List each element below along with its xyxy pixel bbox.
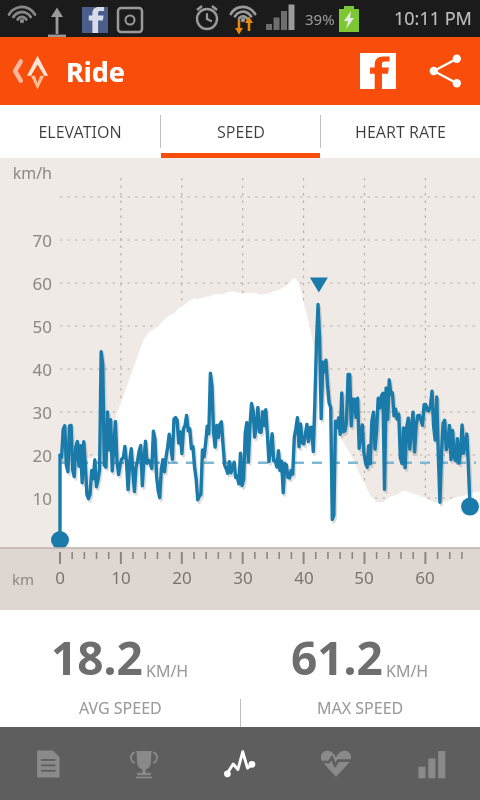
staticText: Ride xyxy=(66,53,125,90)
staticText: 61.2 xyxy=(291,626,383,689)
button[interactable]: Share xyxy=(412,37,480,105)
staticText: 40 xyxy=(291,566,317,589)
staticText: 18.2 xyxy=(51,626,143,689)
button[interactable]: Analysis xyxy=(192,727,288,800)
staticText: AVG SPEED xyxy=(79,697,162,719)
staticText: km xyxy=(12,569,35,589)
staticText: HEART RATE xyxy=(355,121,446,143)
staticText: ELEVATION xyxy=(38,121,122,143)
staticText: KM/H xyxy=(386,660,429,682)
staticText: 10 xyxy=(108,566,134,589)
staticText: 39% xyxy=(305,9,335,29)
button[interactable]: SPEED xyxy=(161,105,320,158)
staticText: KM/H xyxy=(146,660,189,682)
staticText: 50 xyxy=(0,315,52,338)
staticText: 30 xyxy=(230,566,256,589)
button[interactable]: Charts xyxy=(384,727,480,800)
staticText: 30 xyxy=(0,401,52,424)
staticText: 60 xyxy=(0,272,52,295)
staticText: MAX SPEED xyxy=(317,697,404,719)
button[interactable]: Activity details xyxy=(0,727,96,800)
staticText: 10 xyxy=(0,487,52,510)
staticText: 40 xyxy=(0,358,52,381)
staticText: 0 xyxy=(47,566,73,589)
button[interactable]: HEART RATE xyxy=(321,105,480,158)
staticText: 10:11 PM xyxy=(394,6,472,31)
button[interactable]: 61.2 xyxy=(240,610,480,727)
button[interactable]: ELEVATION xyxy=(0,105,160,158)
staticText: SPEED xyxy=(217,121,265,143)
button[interactable]: 18.2 xyxy=(0,610,240,727)
staticText: 70 xyxy=(0,229,52,252)
button[interactable]: Share to Facebook xyxy=(344,37,412,105)
staticText: km/h xyxy=(0,162,52,184)
button[interactable]: Heart rate xyxy=(288,727,384,800)
staticText: 60 xyxy=(412,566,438,589)
button[interactable]: Achievements xyxy=(96,727,192,800)
button[interactable]: Back xyxy=(6,43,131,99)
staticText: 50 xyxy=(351,566,377,589)
staticText: 20 xyxy=(169,566,195,589)
staticText: 20 xyxy=(0,444,52,467)
